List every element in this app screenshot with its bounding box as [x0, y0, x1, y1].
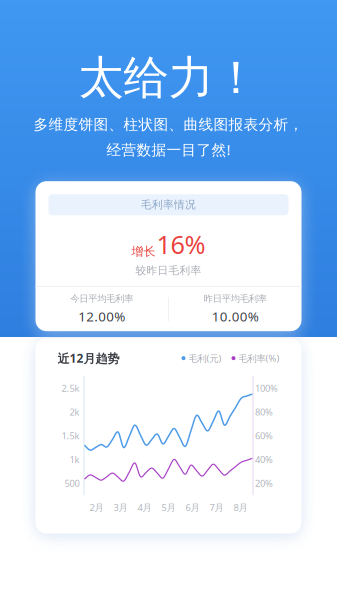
staticText: 40%	[255, 453, 273, 466]
staticText: 100%	[255, 382, 278, 394]
staticText: 10.00%	[212, 307, 259, 325]
staticText: 16%	[156, 227, 205, 261]
staticText: 1.5k	[61, 429, 79, 442]
staticText: 毛利率情况	[141, 198, 196, 211]
staticText: 8月	[233, 501, 247, 513]
staticText: 毛利率(%)	[238, 352, 279, 364]
staticText: 昨日平均毛利率	[204, 293, 267, 304]
staticText: 今日平均毛利率	[70, 293, 133, 304]
staticText: 2k	[69, 406, 79, 418]
staticText: 20%	[255, 477, 273, 489]
staticText: 5月	[161, 501, 175, 513]
staticText: 2.5k	[61, 382, 79, 394]
staticText: 较昨日毛利率	[135, 264, 201, 277]
staticText: 2月	[89, 501, 103, 513]
staticText: 太给力！	[78, 50, 258, 106]
staticText: 80%	[255, 406, 273, 418]
staticText: 1k	[69, 453, 79, 466]
staticText: 12.00%	[78, 307, 125, 325]
staticText: 3月	[113, 501, 127, 513]
staticText: 经营数据一目了然!	[106, 140, 230, 159]
staticText: 4月	[137, 501, 151, 513]
staticText: 增长	[131, 244, 155, 259]
staticText: 多维度饼图、柱状图、曲线图报表分析，	[33, 116, 303, 134]
staticText: 毛利(元)	[188, 352, 221, 364]
staticText: 近12月趋势	[57, 350, 119, 366]
staticText: 500	[64, 477, 79, 489]
staticText: 6月	[185, 501, 199, 513]
staticText: 7月	[209, 501, 223, 513]
staticText: 60%	[255, 429, 273, 442]
